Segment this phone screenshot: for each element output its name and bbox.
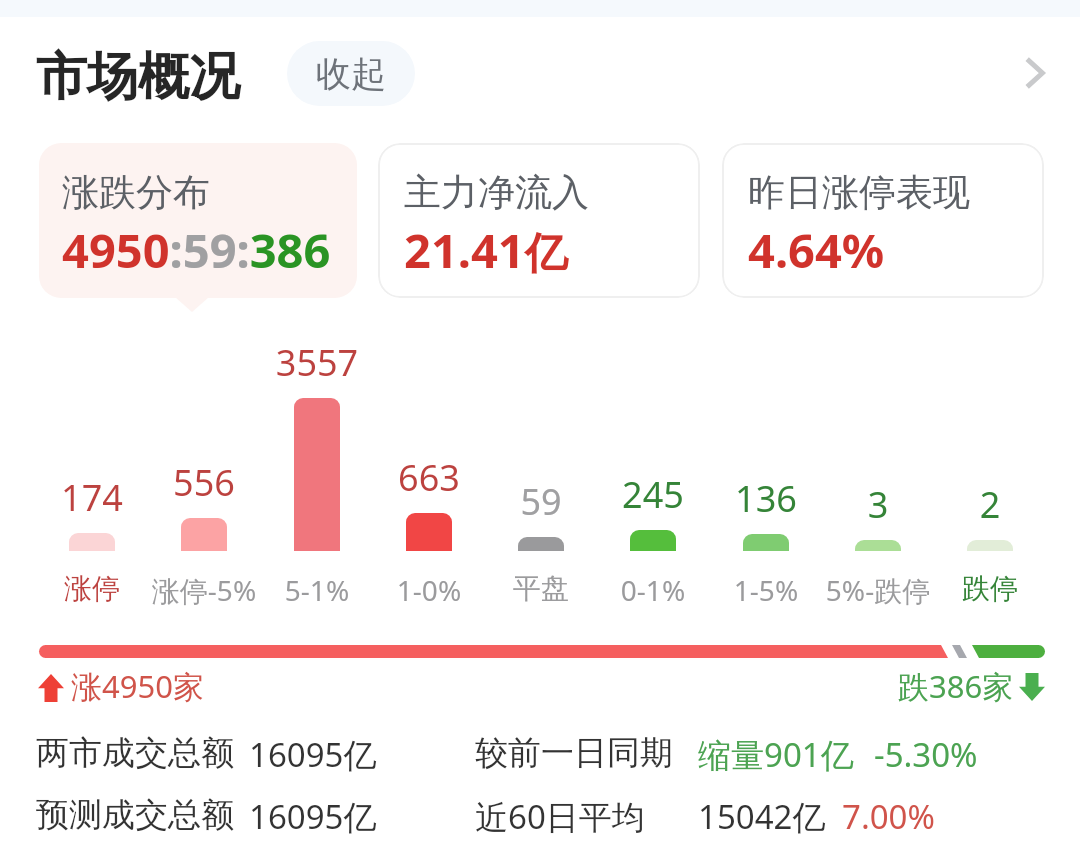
staticText: 1-5% — [696, 571, 836, 609]
staticText: 245 — [593, 470, 713, 519]
button[interactable] — [722, 143, 1044, 298]
staticText: 跌停 — [920, 571, 1060, 606]
button[interactable]: 5-1% 3557 — [261, 330, 373, 605]
staticText: 3 — [818, 480, 938, 529]
staticText: 缩量901亿 — [698, 732, 854, 777]
staticText: 涨跌分布 — [62, 169, 210, 216]
staticText: 市场概况 — [36, 45, 240, 109]
staticText: 涨停-5% — [134, 571, 274, 609]
button[interactable]: 涨跌家数占比 — [39, 645, 1045, 658]
staticText: 136 — [706, 474, 826, 523]
staticText: 涨4950家 — [71, 665, 204, 707]
staticText: 5%-跌停 — [808, 571, 948, 609]
staticText: 收起 — [316, 52, 386, 96]
button[interactable]: 0-1% 245 — [597, 330, 709, 605]
staticText: -5.30% — [874, 732, 978, 777]
button[interactable]: 收起 — [287, 41, 415, 106]
staticText: 两市成交总额 — [36, 732, 234, 774]
staticText: 3557 — [257, 338, 377, 387]
staticText: 7.00% — [842, 794, 935, 839]
button[interactable]: 5%-跌停 3 — [822, 330, 934, 605]
staticText: 16095亿 — [249, 794, 377, 839]
staticText: 4950:59:386 — [62, 218, 331, 282]
staticText: 59 — [481, 477, 601, 526]
button[interactable]: 涨停-5% 556 — [148, 330, 260, 605]
staticText: 昨日涨停表现 — [748, 169, 970, 216]
staticText: 主力净流入 — [404, 169, 589, 216]
staticText: 跌386家 — [898, 665, 1014, 707]
button[interactable]: 跌停 2 — [934, 330, 1046, 605]
staticText: 预测成交总额 — [36, 794, 234, 836]
staticText: 15042亿 — [698, 794, 826, 839]
staticText: 涨停 — [22, 571, 162, 606]
staticText: 平盘 — [471, 571, 611, 606]
staticText: 21.41亿 — [404, 218, 568, 282]
staticText: 2 — [930, 480, 1050, 529]
staticText: 较前一日同期 — [475, 732, 673, 774]
staticText: 近60日平均 — [475, 794, 645, 839]
staticText: 174 — [32, 473, 152, 522]
button[interactable]: 1-0% 663 — [373, 330, 485, 605]
button[interactable] — [378, 143, 700, 298]
staticText: 556 — [144, 458, 264, 507]
button[interactable]: 1-5% 136 — [710, 330, 822, 605]
button[interactable] — [39, 143, 357, 298]
staticText: 16095亿 — [249, 732, 377, 777]
button[interactable]: 平盘 59 — [485, 330, 597, 605]
button[interactable]: 查看更多 — [1000, 38, 1070, 108]
staticText: 1-0% — [359, 571, 499, 609]
staticText: 5-1% — [247, 571, 387, 609]
staticText: 0-1% — [583, 571, 723, 609]
button[interactable]: 涨停 174 — [36, 330, 148, 605]
staticText: 4.64% — [748, 218, 885, 282]
staticText: 663 — [369, 453, 489, 502]
